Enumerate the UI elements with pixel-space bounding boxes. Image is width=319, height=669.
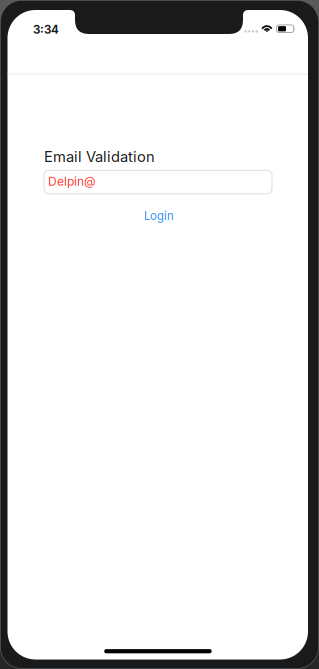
staticText: Email Validation — [44, 148, 155, 165]
staticText: 3:34 — [33, 23, 59, 36]
staticText: Login — [144, 209, 174, 223]
staticText: Delpin@ — [48, 174, 96, 188]
button[interactable]: Login — [141, 207, 177, 225]
